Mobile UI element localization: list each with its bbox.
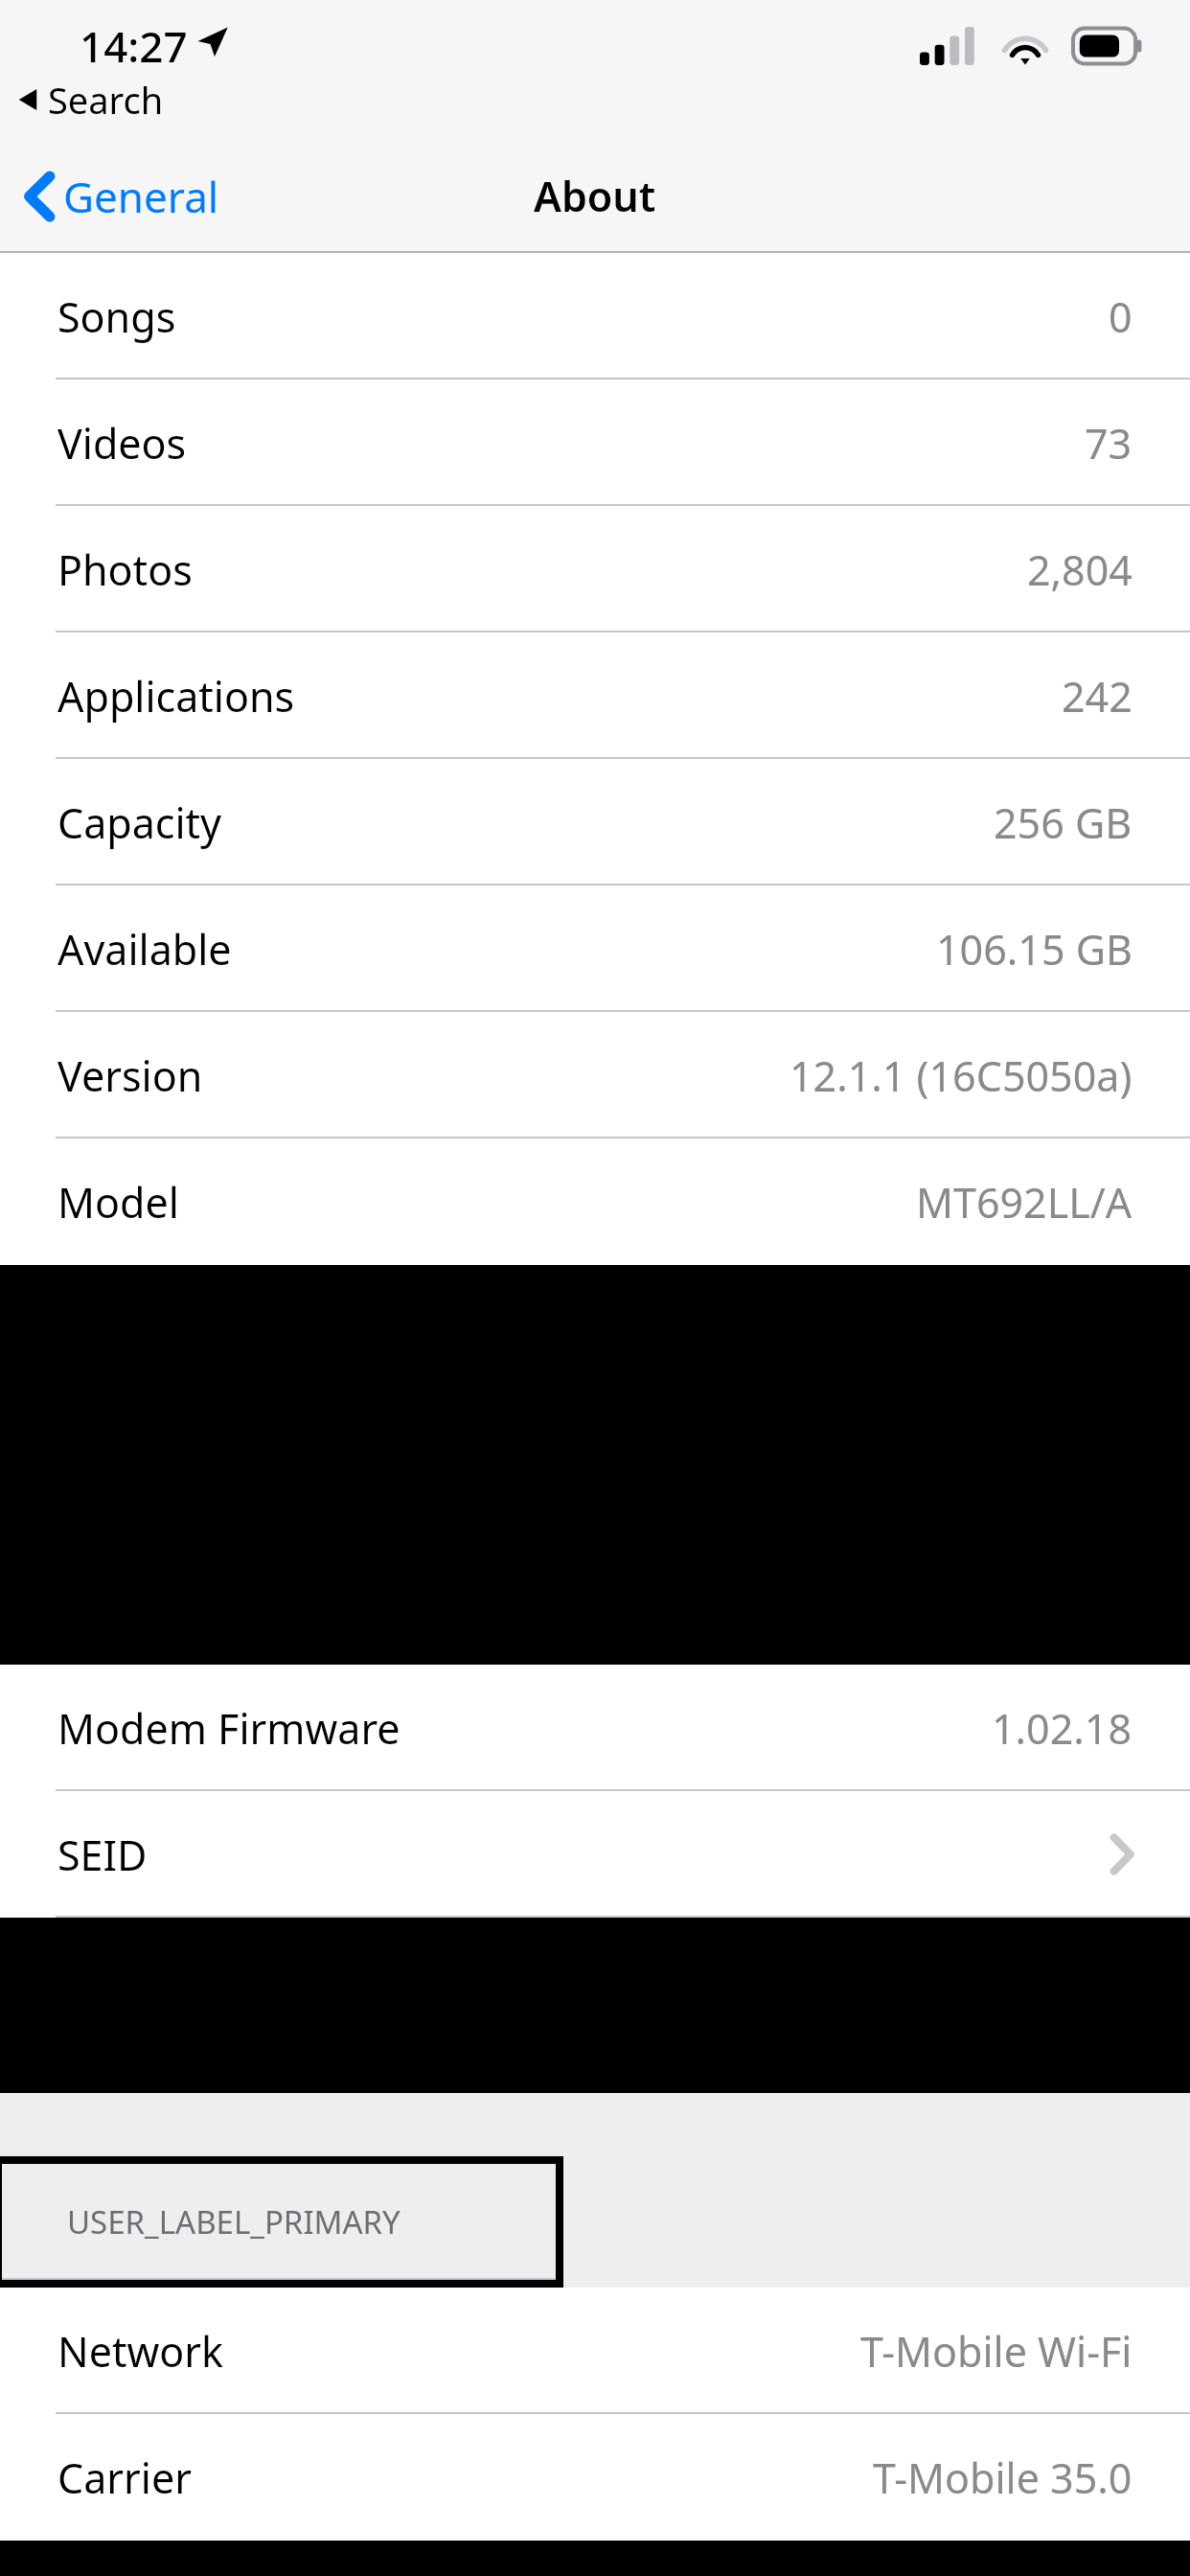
staticText: Capacity [57,794,222,851]
staticText: SEID [57,1827,148,1883]
button[interactable]: Songs [0,253,1190,379]
staticText: 14:27 [80,17,188,75]
staticText: Search [48,75,164,125]
staticText: Photos [57,541,193,598]
button[interactable]: Videos [0,379,1190,506]
button[interactable]: SEID [0,1791,1190,1918]
staticText: Model [57,1174,179,1230]
staticText: T-Mobile Wi-Fi [860,2323,1133,2380]
staticText: Videos [57,415,187,471]
staticText: 12.1.1 (16C5050a) [790,1047,1133,1104]
button[interactable]: Available [0,885,1190,1012]
staticText: General [63,168,219,225]
button[interactable]: Photos [0,506,1190,632]
staticText: Songs [57,288,176,345]
staticText: 1.02.18 [992,1700,1133,1757]
button[interactable]: USER_LABEL_PRIMARY [2,2164,556,2280]
button[interactable]: Capacity [0,759,1190,885]
staticText: Available [57,921,232,977]
staticText: Network [57,2323,223,2380]
staticText: 242 [1062,668,1133,724]
button[interactable]: Search [17,75,164,125]
staticText: 256 GB [994,794,1133,851]
staticText: Applications [57,668,295,724]
staticText: 73 [1085,415,1133,471]
button[interactable]: Version [0,1012,1190,1138]
button[interactable]: Network [0,2288,1190,2414]
staticText: About [534,168,656,224]
button[interactable]: Model [0,1138,1190,1265]
staticText: Version [57,1047,203,1104]
staticText: T-Mobile 35.0 [873,2449,1133,2506]
button[interactable]: Carrier [0,2414,1190,2541]
staticText: Carrier [57,2449,192,2506]
button[interactable]: Applications [0,632,1190,759]
staticText: USER_LABEL_PRIMARY [67,2200,400,2243]
staticText: MT692LL/A [916,1174,1133,1230]
button[interactable]: General [27,168,219,225]
staticText: Modem Firmware [57,1700,400,1757]
staticText: 2,804 [1027,541,1133,598]
other: Open SEID [1111,1835,1133,1874]
button[interactable]: Modem Firmware [0,1665,1190,1791]
staticText: 106.15 GB [936,921,1133,977]
staticText: 0 [1109,288,1133,345]
